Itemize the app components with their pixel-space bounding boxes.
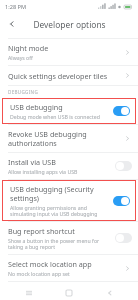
staticText: Bug report shortcut <box>8 226 75 236</box>
staticText: Install via USB <box>8 157 56 167</box>
other: Open <box>123 48 132 57</box>
staticText: Quick settings developer tiles <box>8 71 108 81</box>
button[interactable]: USB debugging (Security settings) <box>2 180 136 221</box>
staticText: Developer options <box>33 19 106 30</box>
staticText: No mock location app set <box>8 270 70 277</box>
button[interactable]: Back <box>98 285 122 300</box>
staticText: Night mode <box>8 43 49 53</box>
button[interactable]: Revoke USB debugging authorizations <box>0 125 138 152</box>
button[interactable]: Night mode <box>0 39 138 65</box>
button[interactable]: Switch on <box>113 196 130 206</box>
button[interactable]: Quick settings developer tiles <box>0 66 138 85</box>
button[interactable]: Home <box>57 285 81 300</box>
staticText: Select mock location app <box>8 259 92 269</box>
button[interactable]: Switch off <box>115 161 132 171</box>
other: Open <box>123 71 132 80</box>
staticText: Show a button in the power menu for taki… <box>8 237 110 250</box>
button[interactable]: Switch on <box>113 106 130 116</box>
button[interactable]: Recents <box>17 285 41 300</box>
staticText: Always off <box>8 54 33 61</box>
staticText: Revoke USB debugging authorizations <box>8 129 118 148</box>
staticText: USB debugging <box>10 102 63 112</box>
other: Open <box>123 264 132 273</box>
staticText: 1:28 PM <box>5 3 27 11</box>
button[interactable]: Bug report shortcut <box>0 222 138 254</box>
button[interactable]: Select mock location app <box>0 255 138 281</box>
staticText: USB debugging (Security settings) <box>10 184 108 203</box>
staticText: DEBUGGING <box>8 89 39 95</box>
staticText: Allow granting permissions and simulatin… <box>10 204 108 217</box>
button[interactable]: Switch off <box>115 233 132 243</box>
button[interactable]: Back <box>5 17 19 31</box>
staticText: Debug mode when USB is connected <box>10 113 100 120</box>
staticText: Allow installing apps via USB <box>8 168 78 175</box>
other: Open <box>123 134 132 143</box>
button[interactable]: USB debugging <box>2 98 136 124</box>
button[interactable]: Install via USB <box>0 153 138 179</box>
